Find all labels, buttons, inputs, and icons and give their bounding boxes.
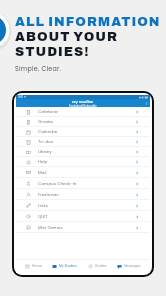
button[interactable]: To-dos [16, 137, 150, 147]
staticText: Guides [95, 264, 107, 269]
staticText: Technical University [69, 104, 97, 107]
staticText: 9:41 ⚑ [18, 95, 27, 99]
button[interactable]: Cafeteria [16, 107, 150, 117]
staticText: To-dos [38, 139, 53, 145]
button[interactable]: My Studies [51, 262, 78, 271]
staticText: Simple. Clear. [15, 64, 62, 73]
staticText: Library [38, 149, 52, 155]
staticText: Home [32, 264, 42, 269]
staticText: Freshman [38, 192, 59, 198]
staticText: Grades [38, 119, 54, 125]
button[interactable]: Freshman [16, 189, 150, 200]
button[interactable]: Mini Games [16, 222, 150, 233]
staticText: My Studies [72, 99, 94, 104]
staticText: Mini Games [38, 225, 63, 231]
button[interactable]: Grades [16, 117, 150, 127]
button[interactable]: Campus Check-In [16, 178, 150, 189]
button[interactable]: More options [143, 100, 149, 106]
button[interactable]: Guides [87, 262, 108, 271]
button[interactable]: QUIT [16, 211, 150, 222]
staticText: Mail [38, 170, 47, 176]
staticText: Cafeteria [38, 109, 58, 115]
button[interactable]: Home [24, 262, 43, 271]
button[interactable]: Messages [116, 262, 142, 271]
staticText: Campus Check-In [38, 181, 77, 187]
staticText: ALL INFORMATION [15, 15, 161, 29]
staticText: QUIT [38, 214, 48, 220]
button[interactable]: Library [16, 147, 150, 157]
staticText: Calendar [38, 129, 58, 135]
button[interactable]: Links [16, 200, 150, 211]
staticText: My Studies [59, 264, 77, 269]
staticText: Messages [124, 264, 141, 269]
button[interactable]: Calendar [16, 127, 150, 137]
button[interactable]: Help [16, 157, 150, 167]
staticText: Help [38, 159, 48, 165]
staticText: ABOUT YOUR [15, 30, 118, 44]
button[interactable]: Mail [16, 167, 150, 178]
staticText: STUDIES! [15, 45, 90, 59]
staticText: Links [38, 203, 48, 209]
